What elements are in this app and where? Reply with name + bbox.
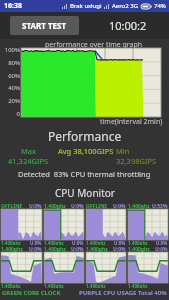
staticText: 1.400ghz: [1, 240, 21, 245]
staticText: 20%: [0, 97, 20, 105]
staticText: 0: [0, 110, 20, 118]
staticText: U:0%: [114, 240, 126, 245]
staticText: U:0%: [29, 203, 42, 209]
staticText: OFFLINE: [86, 203, 108, 209]
staticText: U:0%: [113, 246, 126, 252]
staticText: CPU Monitor: [55, 186, 115, 200]
staticText: 1.400ghz: [44, 240, 64, 245]
staticText: U:53%: [152, 203, 168, 209]
staticText: U:0%: [72, 240, 84, 245]
staticText: U:0%: [155, 246, 168, 252]
staticText: 100%: [0, 46, 20, 54]
staticText: OFFLINE: [1, 203, 23, 209]
staticText: 1.400ghz: [86, 283, 106, 288]
staticText: performance over time graph: [45, 40, 143, 50]
staticText: Min 32,398GIPS: [116, 146, 169, 166]
staticText: 1.400ghz: [86, 240, 106, 245]
staticText: U:0%: [30, 240, 42, 245]
button[interactable]: START TEST: [10, 16, 79, 35]
staticText: 40%: [0, 84, 20, 92]
staticText: 1.400ghz: [128, 246, 150, 252]
staticText: 10:00:2: [109, 18, 147, 33]
staticText: 1.400ghz: [1, 283, 21, 288]
staticText: Max: [21, 146, 36, 156]
button[interactable]: 1.400ghz: [128, 246, 168, 288]
staticText: U:0%: [29, 246, 42, 252]
staticText: U:0%: [71, 246, 84, 252]
staticText: U:0%: [113, 203, 126, 209]
staticText: START TEST: [22, 20, 67, 31]
staticText: PURPLE CPU USAGE Total 40%: [79, 289, 167, 297]
staticText: Detected 83% CPU thermal throttling: [18, 169, 151, 179]
staticText: 80%: [0, 59, 20, 67]
button[interactable]: 1.400ghz: [86, 246, 126, 288]
staticText: Avg 38,100GIPS: [58, 146, 114, 156]
staticText: 1.400ghz: [128, 283, 148, 288]
staticText: GREEN CORE CLOCK: [2, 289, 61, 297]
staticText: 1.400ghz: [128, 203, 150, 209]
staticText: U:0%: [71, 203, 84, 209]
staticText: 41,324GIPS: [8, 156, 49, 166]
staticText: Brak usługi: [70, 2, 102, 10]
staticText: 74%: [154, 2, 166, 10]
staticText: 1.400ghz: [44, 283, 64, 288]
staticText: 16:38: [4, 1, 22, 11]
staticText: 60%: [0, 72, 20, 80]
button[interactable]: 1.400ghz: [128, 203, 168, 245]
staticText: Performance: [48, 128, 122, 144]
button[interactable]: OFFLINE: [86, 203, 126, 245]
staticText: time(interval 2min): [100, 117, 163, 127]
button[interactable]: 1.400ghz: [44, 246, 84, 288]
staticText: Aero2 3G: [112, 2, 138, 10]
button[interactable]: 1.400ghz: [1, 246, 42, 288]
staticText: 1.400ghz: [44, 246, 66, 252]
staticText: 1.400ghz: [44, 203, 66, 209]
staticText: U:0%: [156, 240, 168, 245]
button[interactable]: OFFLINE: [1, 203, 42, 245]
staticText: 1.400ghz: [1, 246, 23, 252]
button[interactable]: 1.400ghz: [44, 203, 84, 245]
staticText: 1.400ghz: [86, 246, 108, 252]
staticText: 1.400ghz: [128, 240, 148, 245]
